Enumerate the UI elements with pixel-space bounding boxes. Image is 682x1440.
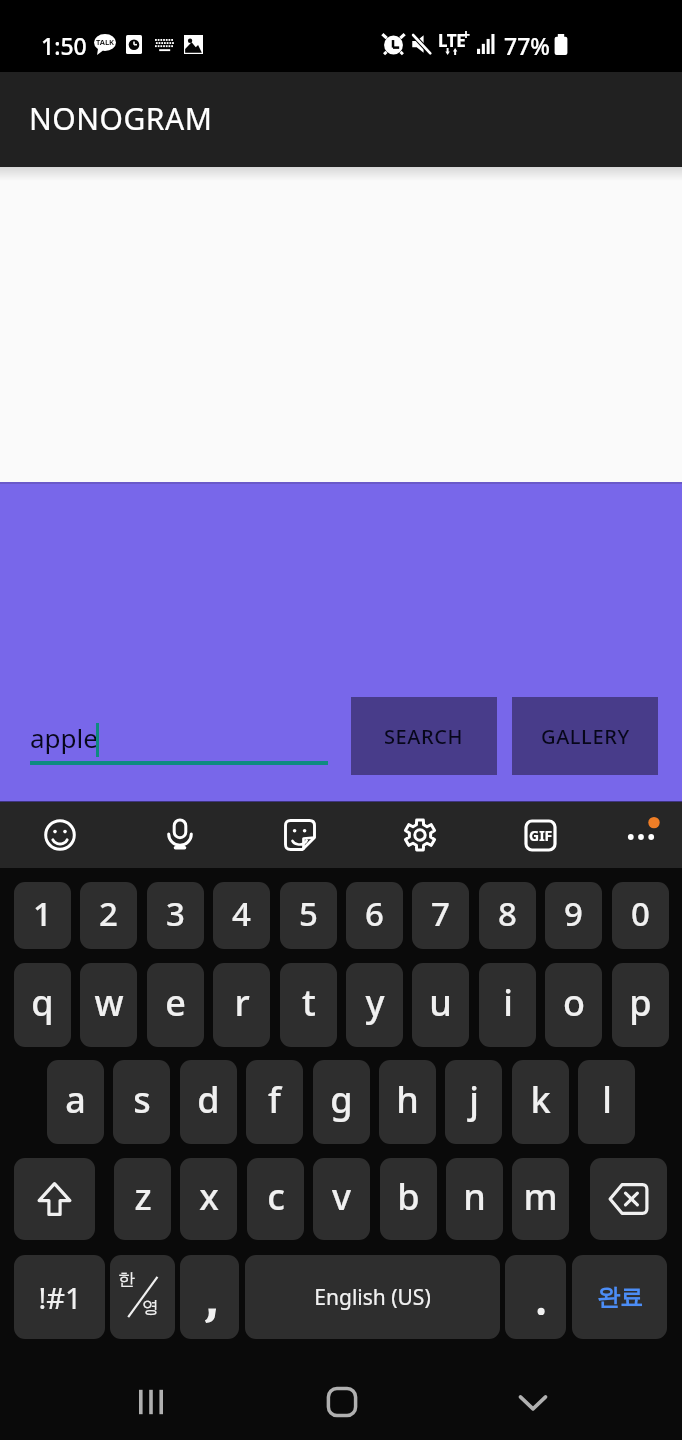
staticText: n bbox=[463, 1172, 486, 1221]
staticText: q bbox=[31, 978, 54, 1027]
button[interactable]: r bbox=[213, 963, 270, 1047]
button[interactable]: j bbox=[445, 1060, 502, 1144]
button[interactable]: Voice input bbox=[155, 810, 205, 860]
staticText: English (US) bbox=[314, 1283, 431, 1312]
staticText: 한 bbox=[118, 1269, 135, 1290]
button[interactable]: GIF bbox=[519, 810, 561, 860]
staticText: SEARCH bbox=[384, 723, 464, 750]
button[interactable]: x bbox=[180, 1158, 237, 1240]
button[interactable]: d bbox=[180, 1060, 237, 1144]
button[interactable]: Backspace bbox=[590, 1158, 667, 1240]
button[interactable]: 9 bbox=[545, 882, 602, 949]
button[interactable]: 4 bbox=[213, 882, 270, 949]
button[interactable]: Comma bbox=[180, 1255, 239, 1339]
button[interactable]: q bbox=[14, 963, 71, 1047]
staticText: 8 bbox=[498, 891, 517, 936]
staticText: s bbox=[133, 1075, 151, 1124]
button[interactable]: 5 bbox=[280, 882, 337, 949]
staticText: r bbox=[234, 978, 250, 1027]
button[interactable]: 1 bbox=[14, 882, 71, 949]
button[interactable]: a bbox=[47, 1060, 104, 1144]
button[interactable]: m bbox=[512, 1158, 569, 1240]
button[interactable]: g bbox=[313, 1060, 370, 1144]
button[interactable]: Recents bbox=[126, 1377, 176, 1427]
button[interactable]: Emoji bbox=[35, 810, 85, 860]
staticText: o bbox=[563, 978, 585, 1027]
button[interactable]: i bbox=[479, 963, 536, 1047]
staticText: w bbox=[94, 978, 124, 1027]
button[interactable]: w bbox=[80, 963, 137, 1047]
staticText: k bbox=[530, 1075, 551, 1124]
button[interactable]: y bbox=[346, 963, 403, 1047]
staticText: 3 bbox=[166, 891, 185, 936]
staticText: 1 bbox=[33, 891, 52, 936]
staticText: e bbox=[165, 978, 186, 1027]
button[interactable]: Shift bbox=[14, 1158, 95, 1240]
button[interactable]: n bbox=[446, 1158, 503, 1240]
button[interactable]: e bbox=[147, 963, 204, 1047]
staticText: + bbox=[462, 25, 471, 44]
button[interactable]: z bbox=[114, 1158, 171, 1240]
button[interactable]: Settings bbox=[395, 810, 445, 860]
button[interactable]: Period bbox=[505, 1255, 566, 1339]
staticText: x bbox=[199, 1172, 219, 1221]
button[interactable]: More options bbox=[616, 810, 666, 860]
staticText: 5 bbox=[299, 891, 318, 936]
button[interactable]: English (US) bbox=[245, 1255, 500, 1339]
button[interactable]: b bbox=[380, 1158, 437, 1240]
button[interactable]: 2 bbox=[80, 882, 137, 949]
button[interactable]: l bbox=[578, 1060, 635, 1144]
staticText: f bbox=[268, 1075, 281, 1124]
button[interactable]: Home bbox=[317, 1377, 367, 1427]
staticText: 9 bbox=[564, 891, 583, 936]
staticText: GIF bbox=[529, 826, 553, 845]
button[interactable]: Hide keyboard bbox=[508, 1377, 558, 1427]
button[interactable]: 8 bbox=[479, 882, 536, 949]
staticText: GALLERY bbox=[541, 723, 630, 750]
staticText: p bbox=[629, 978, 652, 1027]
staticText: apple bbox=[30, 720, 98, 755]
button[interactable]: o bbox=[545, 963, 602, 1047]
button[interactable]: u bbox=[412, 963, 469, 1047]
staticText: l bbox=[602, 1075, 612, 1124]
staticText: TALK bbox=[94, 37, 116, 47]
button[interactable]: s bbox=[113, 1060, 170, 1144]
button[interactable]: !#1 bbox=[14, 1255, 105, 1339]
staticText: j bbox=[469, 1075, 479, 1124]
staticText: h bbox=[396, 1075, 419, 1124]
staticText: v bbox=[332, 1172, 351, 1221]
button[interactable]: f bbox=[246, 1060, 303, 1144]
staticText: !#1 bbox=[38, 1278, 82, 1317]
button[interactable]: t bbox=[280, 963, 337, 1047]
staticText: g bbox=[330, 1075, 353, 1124]
button[interactable]: 0 bbox=[612, 882, 669, 949]
staticText: 완료 bbox=[597, 1283, 643, 1312]
button[interactable]: h bbox=[379, 1060, 436, 1144]
staticText: NONOGRAM bbox=[29, 98, 213, 139]
staticText: 영 bbox=[142, 1297, 159, 1318]
button[interactable]: 3 bbox=[147, 882, 204, 949]
staticText: LTE bbox=[438, 29, 466, 52]
button[interactable]: SEARCH bbox=[351, 697, 497, 775]
button[interactable]: v bbox=[313, 1158, 370, 1240]
staticText: 4 bbox=[232, 891, 251, 936]
button[interactable]: 완료 bbox=[572, 1255, 667, 1339]
staticText: a bbox=[65, 1075, 86, 1124]
button[interactable]: k bbox=[512, 1060, 569, 1144]
staticText: 2 bbox=[99, 891, 118, 936]
button[interactable]: c bbox=[247, 1158, 304, 1240]
button[interactable]: GALLERY bbox=[512, 697, 658, 775]
button[interactable]: Language bbox=[110, 1255, 175, 1339]
button[interactable]: p bbox=[612, 963, 669, 1047]
button[interactable]: Stickers bbox=[275, 810, 325, 860]
staticText: i bbox=[503, 978, 513, 1027]
staticText: 6 bbox=[365, 891, 384, 936]
staticText: c bbox=[267, 1172, 285, 1221]
button[interactable]: 6 bbox=[346, 882, 403, 949]
staticText: 0 bbox=[631, 891, 650, 936]
staticText: y bbox=[365, 978, 385, 1027]
staticText: u bbox=[429, 978, 452, 1027]
button[interactable]: 7 bbox=[412, 882, 469, 949]
staticText: 77% bbox=[504, 30, 550, 61]
staticText: z bbox=[134, 1172, 152, 1221]
